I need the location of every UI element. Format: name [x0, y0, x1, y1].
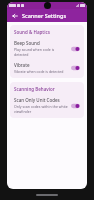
button[interactable]: Scan Only Unit Codes — [14, 97, 80, 114]
staticText: Play sound when code is detected — [14, 47, 68, 57]
staticText: Scan Only Unit Codes — [14, 97, 60, 103]
staticText: Scanner Settings — [22, 12, 67, 19]
staticText: Sound & Haptics — [14, 29, 50, 35]
button[interactable]: On — [71, 103, 80, 109]
button[interactable]: Beep Sound — [14, 40, 80, 57]
button[interactable]: Vibrate — [14, 62, 80, 74]
staticText: Scanning Behavior — [14, 86, 55, 92]
staticText: Vibrate — [14, 62, 30, 68]
button[interactable]: On — [71, 65, 80, 71]
staticText: Vibrate when code is detected — [14, 69, 64, 74]
button[interactable]: Back — [10, 11, 20, 21]
staticText: Beep Sound — [14, 40, 40, 46]
button[interactable]: On — [71, 46, 80, 52]
staticText: Only scan codes within the white viewfin… — [14, 104, 68, 114]
